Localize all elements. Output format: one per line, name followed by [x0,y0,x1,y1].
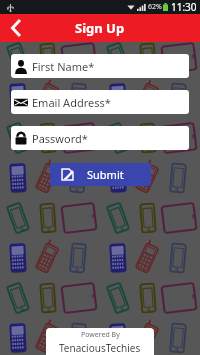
button[interactable]: Email Address* [11,90,189,114]
staticText: Submit [87,167,124,182]
staticText: Email Address* [32,95,111,110]
staticText: 62% [148,2,162,12]
staticText: Sign Up [75,19,125,37]
button[interactable]: Password* [11,126,189,150]
staticText: TenaciousTechies [59,341,141,355]
staticText: 11:30 [171,0,197,14]
staticText: Powered By [81,330,120,340]
button[interactable]: Submit [50,163,151,186]
button[interactable]: Back [0,14,32,42]
staticText: First Name* [32,59,95,74]
staticText: Password* [32,131,88,146]
button[interactable]: First Name* [11,54,189,78]
